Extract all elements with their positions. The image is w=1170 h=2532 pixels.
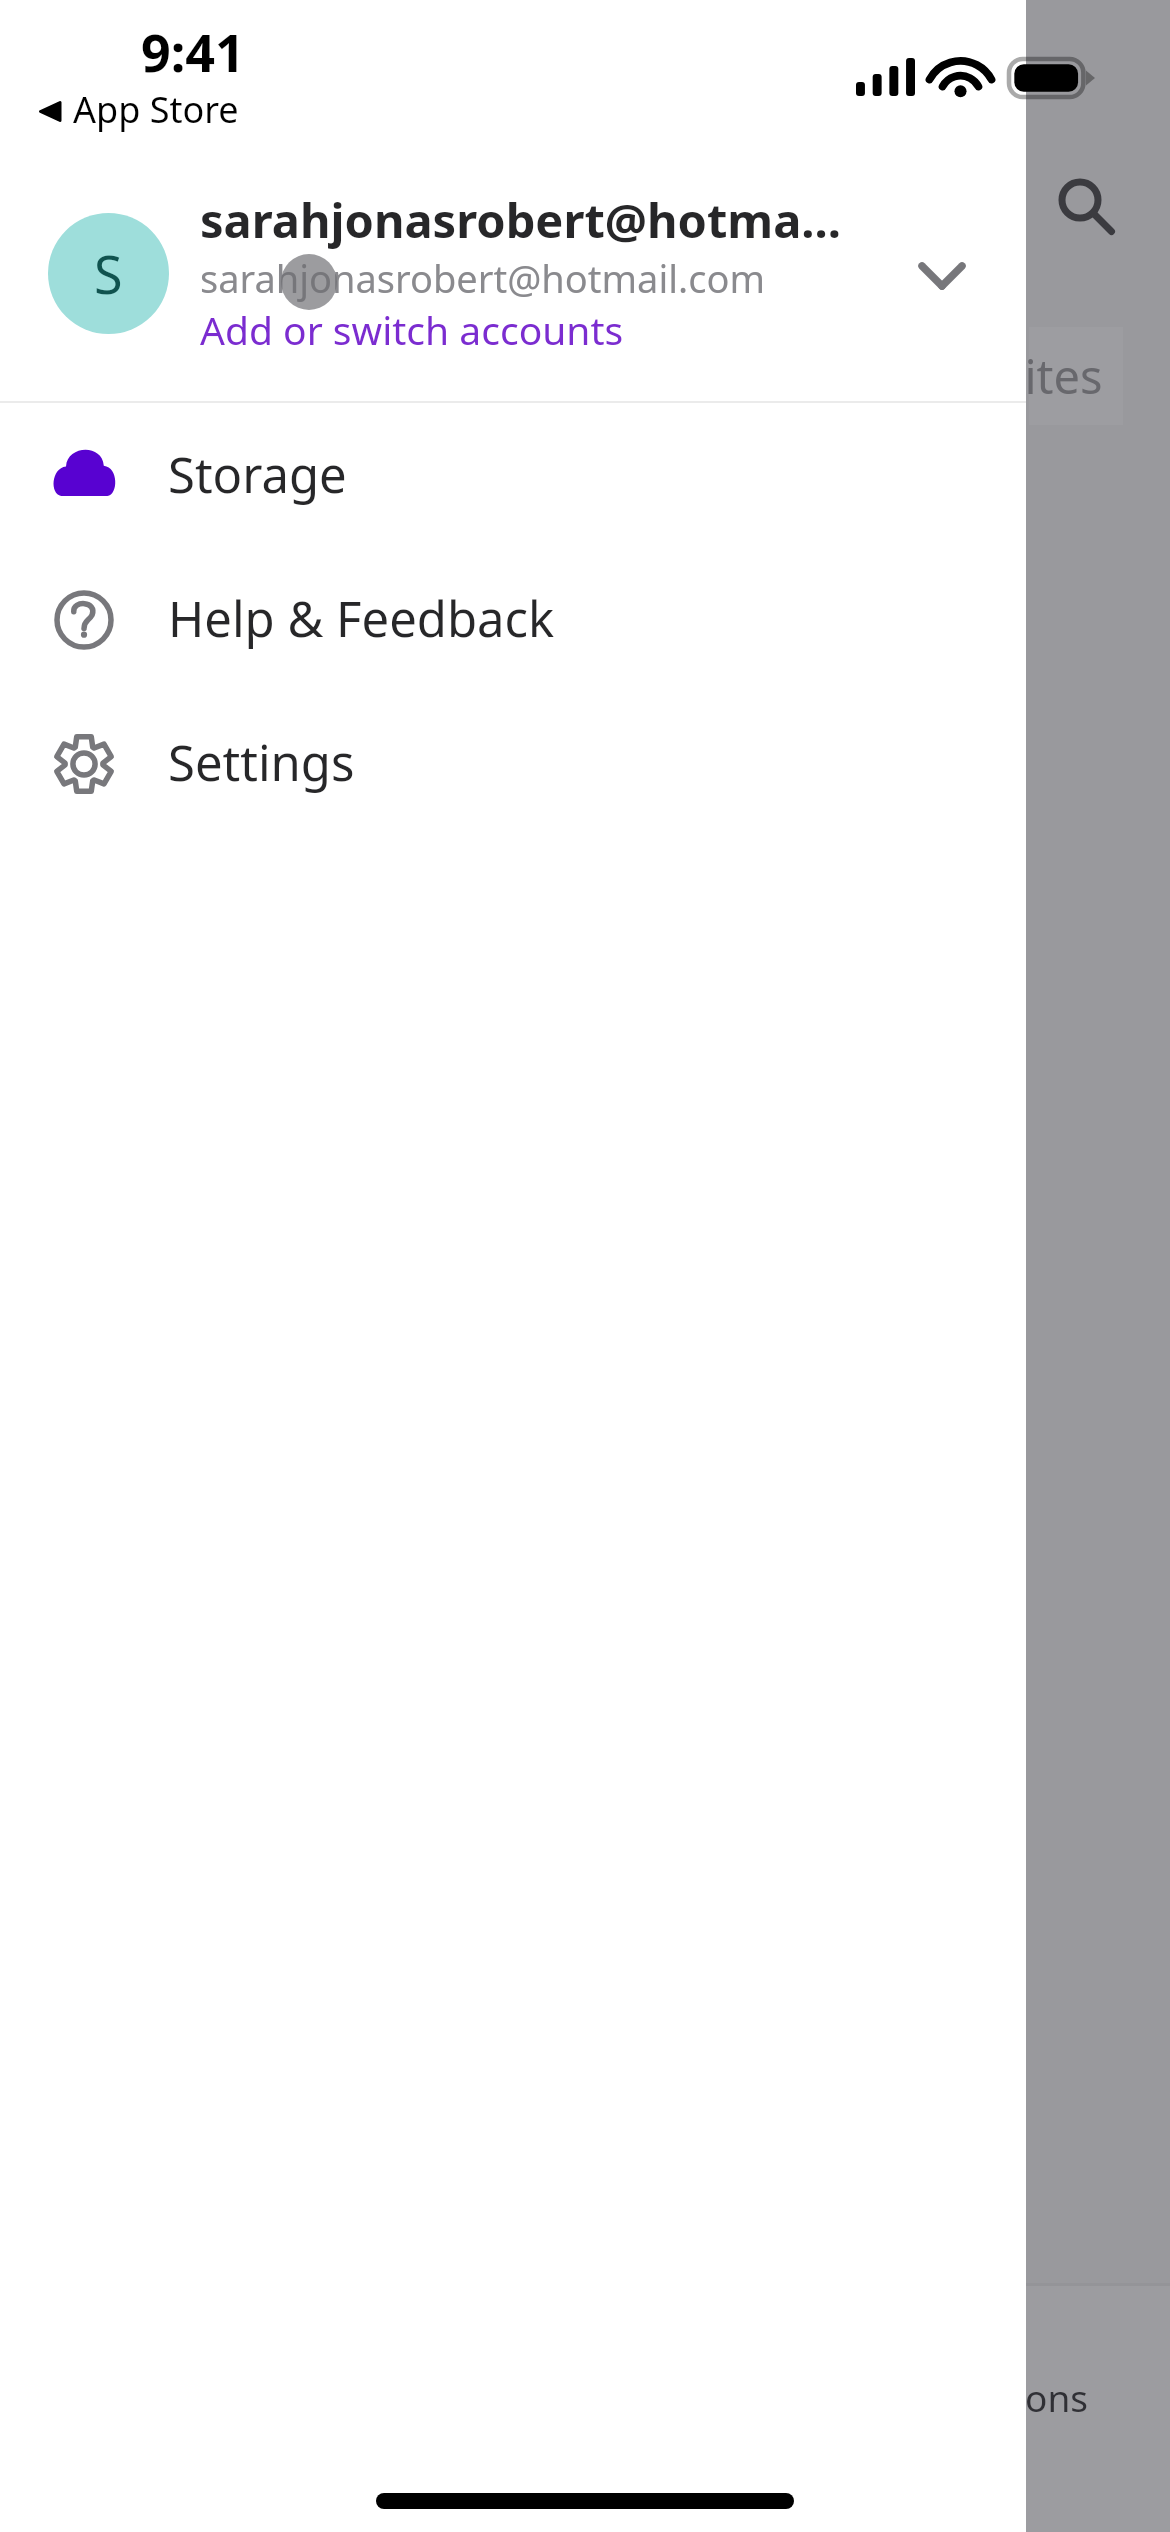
- staticText: S: [94, 238, 123, 309]
- staticText: sarahjonasrobert@hotma...: [200, 188, 841, 252]
- button[interactable]: Search: [1020, 140, 1140, 260]
- staticText: App Store: [73, 85, 239, 134]
- staticText: Help & Feedback: [168, 585, 555, 652]
- button[interactable]: Help & Feedback: [0, 548, 1026, 692]
- button[interactable]: Add or switch accounts: [200, 303, 624, 356]
- button[interactable]: Storage: [0, 401, 1026, 545]
- button[interactable]: Settings: [0, 692, 1026, 836]
- staticText: 9:41: [141, 16, 245, 87]
- button[interactable]: S: [0, 180, 1026, 400]
- staticText: Notifications: [868, 2372, 1089, 2422]
- button[interactable]: [1029, 327, 1123, 425]
- staticText: Settings: [168, 729, 355, 796]
- button[interactable]: Switch account: [907, 241, 977, 311]
- staticText: sarahjonasrobert@hotmail.com: [200, 252, 765, 304]
- staticText: Storage: [168, 441, 347, 508]
- staticText: Add or switch accounts: [200, 303, 624, 356]
- staticText: Favorites: [902, 344, 1103, 408]
- button[interactable]: Notifications: [868, 2300, 1170, 2470]
